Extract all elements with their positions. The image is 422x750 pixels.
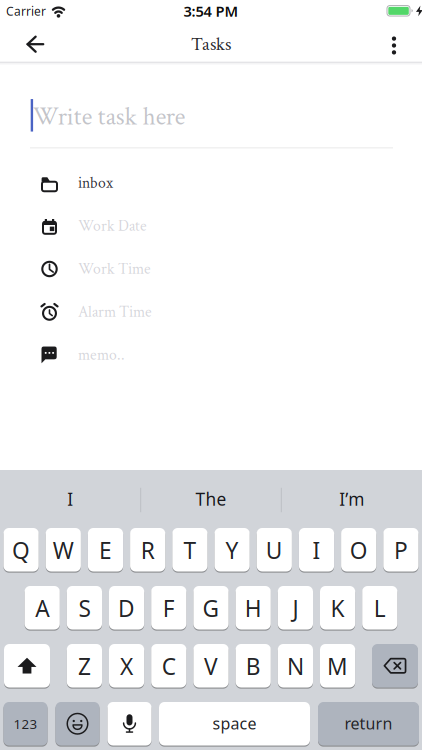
button[interactable]: N [278, 643, 313, 688]
button[interactable]: E [88, 527, 123, 572]
staticText: Z [78, 651, 91, 681]
staticText: 123 [13, 715, 37, 733]
button[interactable]: Dictate [107, 701, 151, 746]
staticText: W [53, 535, 74, 565]
button[interactable]: J [278, 585, 313, 630]
button[interactable]: X [109, 643, 144, 688]
button[interactable]: M [320, 643, 355, 688]
button[interactable]: Write task here [0, 91, 422, 143]
button[interactable]: G [193, 585, 229, 630]
button[interactable]: K [320, 585, 355, 630]
button[interactable]: memo.. [0, 333, 422, 376]
staticText: L [374, 593, 386, 623]
staticText: K [331, 593, 345, 623]
staticText: X [120, 651, 133, 681]
button[interactable]: Back [13, 26, 57, 62]
staticText: Q [12, 535, 30, 565]
staticText: A [35, 593, 49, 623]
staticText: O [350, 535, 368, 565]
staticText: S [78, 593, 90, 623]
button[interactable]: return [318, 701, 419, 746]
staticText: Tasks [191, 33, 231, 56]
button[interactable]: space [159, 701, 310, 746]
button[interactable]: D [109, 585, 144, 630]
button[interactable]: B [236, 643, 271, 688]
staticText: B [246, 651, 261, 681]
button[interactable]: Z [67, 643, 102, 688]
staticText: N [287, 651, 304, 681]
button[interactable]: O [341, 527, 376, 572]
button[interactable]: C [151, 643, 186, 688]
staticText: I [312, 535, 320, 565]
staticText: space [212, 713, 256, 734]
staticText: U [266, 535, 283, 565]
staticText: E [99, 535, 112, 565]
staticText: H [245, 593, 262, 623]
staticText: Work Time [78, 259, 151, 279]
button[interactable]: Work Time [0, 247, 422, 290]
button[interactable]: W [46, 527, 81, 572]
staticText: Write task here [33, 101, 185, 133]
button[interactable]: Alarm Time [0, 290, 422, 333]
button[interactable]: Delete [372, 643, 418, 688]
button[interactable]: I’m [287, 476, 417, 522]
staticText: D [118, 593, 135, 623]
button[interactable]: Y [214, 527, 250, 572]
staticText: V [204, 651, 218, 681]
staticText: I [67, 487, 73, 510]
button[interactable]: I [5, 476, 135, 522]
staticText: I’m [339, 487, 364, 510]
button[interactable]: The [146, 476, 276, 522]
staticText: P [394, 535, 408, 565]
button[interactable]: Q [3, 527, 39, 572]
button[interactable]: Work Date [0, 204, 422, 247]
staticText: F [163, 593, 175, 623]
staticText: Work Date [78, 216, 147, 236]
staticText: T [183, 535, 196, 565]
button[interactable]: H [236, 585, 271, 630]
button[interactable]: Numbers [3, 701, 47, 746]
button[interactable]: F [151, 585, 186, 630]
staticText: J [292, 593, 298, 623]
staticText: G [202, 593, 219, 623]
staticText: memo.. [78, 345, 125, 365]
button[interactable]: R [130, 527, 165, 572]
button[interactable]: More options [374, 27, 414, 63]
staticText: The [195, 487, 226, 510]
button[interactable]: T [172, 527, 207, 572]
staticText: M [327, 651, 348, 681]
button[interactable]: U [257, 527, 292, 572]
button[interactable]: Shift [4, 643, 50, 688]
button[interactable]: P [383, 527, 418, 572]
button[interactable]: I [299, 527, 334, 572]
staticText: Alarm Time [78, 302, 152, 322]
button[interactable]: S [67, 585, 102, 630]
button[interactable]: Emoji [55, 701, 99, 746]
staticText: C [162, 651, 176, 681]
staticText: Carrier [6, 3, 46, 19]
staticText: R [141, 535, 155, 565]
staticText: return [344, 713, 392, 734]
button[interactable]: L [362, 585, 397, 630]
staticText: inbox [78, 173, 113, 193]
staticText: 3:54 PM [183, 1, 238, 21]
button[interactable]: inbox [0, 161, 422, 204]
staticText: Y [226, 535, 239, 565]
button[interactable]: V [193, 643, 229, 688]
button[interactable]: A [25, 585, 60, 630]
